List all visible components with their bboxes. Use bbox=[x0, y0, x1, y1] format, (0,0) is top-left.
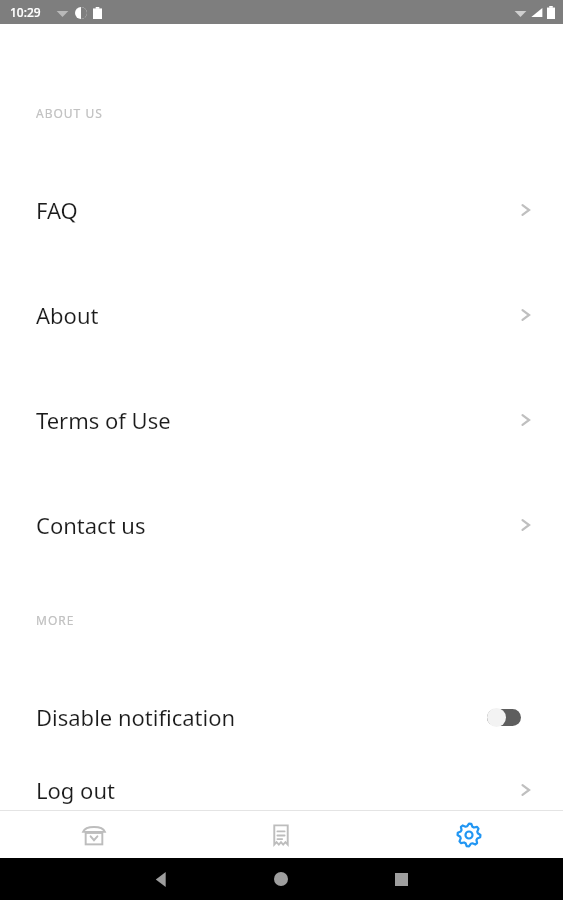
button[interactable]: Back bbox=[140, 858, 182, 900]
button[interactable]: About bbox=[0, 262, 563, 367]
staticText: MORE bbox=[36, 612, 75, 628]
staticText: Contact us bbox=[36, 510, 146, 540]
staticText: About bbox=[36, 300, 99, 330]
button[interactable]: Terms of Use bbox=[0, 367, 563, 472]
staticText: Log out bbox=[36, 775, 115, 805]
staticText: Disable notification bbox=[36, 702, 236, 732]
button[interactable]: Disable notification bbox=[0, 664, 563, 769]
button[interactable]: Recent apps bbox=[380, 858, 422, 900]
button[interactable]: Contact us bbox=[0, 472, 563, 577]
button[interactable]: Orders bbox=[187, 811, 375, 858]
button[interactable]: Home bbox=[260, 858, 302, 900]
staticText: ABOUT US bbox=[36, 105, 103, 121]
staticText: FAQ bbox=[36, 195, 78, 225]
staticText: Terms of Use bbox=[36, 405, 171, 435]
button[interactable]: FAQ bbox=[0, 157, 563, 262]
button[interactable]: Settings bbox=[375, 811, 563, 858]
staticText: 10:29 bbox=[10, 4, 41, 20]
button[interactable]: Shop bbox=[0, 811, 187, 858]
button[interactable]: Log out bbox=[0, 769, 563, 810]
